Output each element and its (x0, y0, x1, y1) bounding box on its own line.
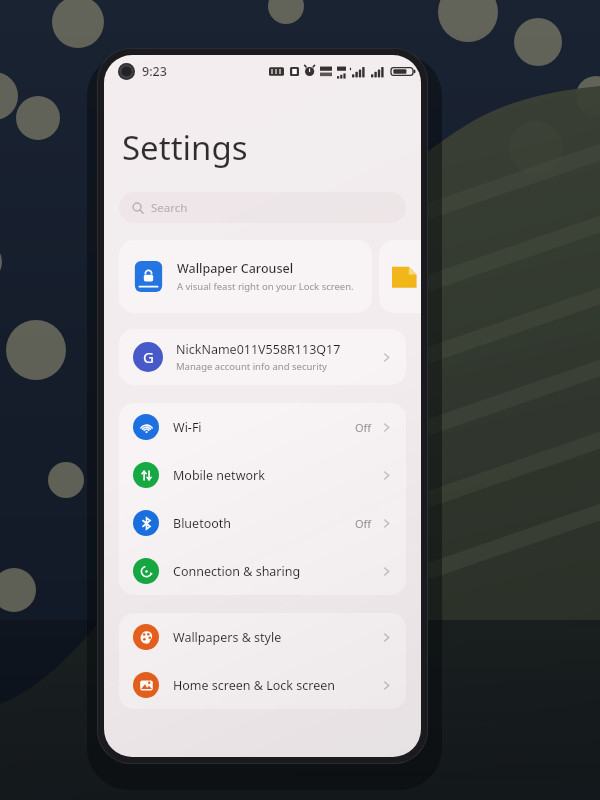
button[interactable]: More wallpaper options (379, 240, 421, 313)
button[interactable]: Bluetooth (119, 499, 406, 547)
button[interactable]: Wallpapers & style (119, 613, 406, 661)
staticText: Off (355, 516, 372, 531)
staticText: Settings (122, 125, 248, 170)
staticText: Home screen & Lock screen (173, 677, 381, 694)
button[interactable]: Connection & sharing (119, 547, 406, 595)
staticText: Wallpapers & style (173, 629, 381, 646)
staticText: Bluetooth (173, 515, 355, 532)
staticText: Connection & sharing (173, 563, 381, 580)
button[interactable]: Wallpaper Carousel (119, 240, 372, 313)
button[interactable]: Home screen & Lock screen (119, 661, 406, 709)
staticText: Off (355, 420, 372, 435)
staticText: Search (151, 200, 188, 216)
staticText: G (143, 347, 154, 367)
staticText: Manage account info and security (176, 360, 327, 373)
button[interactable]: Mobile network (119, 451, 406, 499)
staticText: Mobile network (173, 467, 381, 484)
staticText: Wallpaper Carousel (177, 260, 294, 277)
staticText: NickName011V558R113Q17 (176, 341, 341, 358)
staticText: Wi-Fi (173, 419, 355, 436)
button[interactable]: Wi-Fi (119, 403, 406, 451)
button[interactable]: G (119, 329, 406, 385)
staticText: 9:23 (142, 63, 167, 80)
button[interactable]: Search (119, 192, 406, 223)
staticText: A visual feast right on your Lock screen… (177, 280, 354, 293)
